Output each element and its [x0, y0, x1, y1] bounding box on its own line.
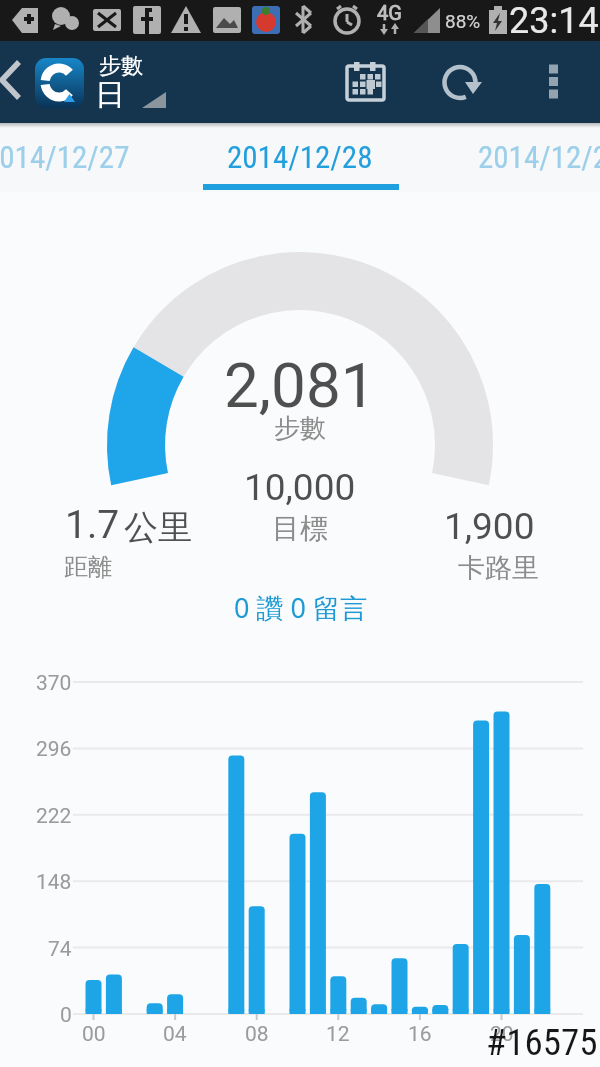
- staticText: 222: [36, 804, 72, 829]
- staticText: 目標: [272, 511, 328, 546]
- button[interactable]: 2014/12/27: [0, 123, 132, 192]
- staticText: 08: [245, 1022, 269, 1047]
- button[interactable]: [345, 61, 387, 105]
- staticText: 23:14: [509, 0, 599, 41]
- staticText: 1,900: [444, 505, 535, 548]
- staticText: 00: [82, 1022, 106, 1047]
- button[interactable]: 2014/12/29: [478, 123, 600, 192]
- button[interactable]: [35, 58, 84, 108]
- staticText: 4G: [377, 1, 402, 24]
- button[interactable]: [535, 55, 580, 113]
- staticText: 12: [326, 1022, 350, 1047]
- staticText: 370: [36, 671, 72, 696]
- staticText: 04: [163, 1022, 187, 1047]
- staticText: 74: [48, 937, 72, 962]
- staticText: 148: [36, 870, 72, 895]
- staticText: 10,000: [244, 466, 356, 509]
- staticText: 0 讚 0 留言: [234, 589, 367, 625]
- button[interactable]: [0, 59, 26, 103]
- staticText: 卡路里: [458, 551, 539, 585]
- button[interactable]: 0 讚 0 留言: [230, 589, 370, 625]
- staticText: 公里: [124, 506, 192, 549]
- staticText: 2,081: [224, 349, 376, 422]
- staticText: 2014/12/27: [0, 139, 130, 175]
- button[interactable]: [438, 60, 482, 104]
- button[interactable]: 2014/12/28: [200, 123, 400, 192]
- staticText: 步數: [99, 52, 143, 80]
- staticText: 296: [36, 737, 72, 762]
- staticText: 16: [408, 1022, 432, 1047]
- staticText: 2014/12/29: [478, 139, 600, 175]
- staticText: 步數: [274, 412, 326, 445]
- staticText: 20: [490, 1022, 514, 1047]
- staticText: #16575: [486, 1021, 598, 1064]
- staticText: 距離: [64, 552, 112, 582]
- staticText: 88%: [445, 10, 481, 32]
- staticText: 2014/12/28: [227, 139, 373, 175]
- staticText: 0: [60, 1003, 72, 1028]
- staticText: 1.7: [65, 502, 120, 548]
- staticText: 日: [95, 76, 125, 114]
- button[interactable]: [92, 41, 172, 123]
